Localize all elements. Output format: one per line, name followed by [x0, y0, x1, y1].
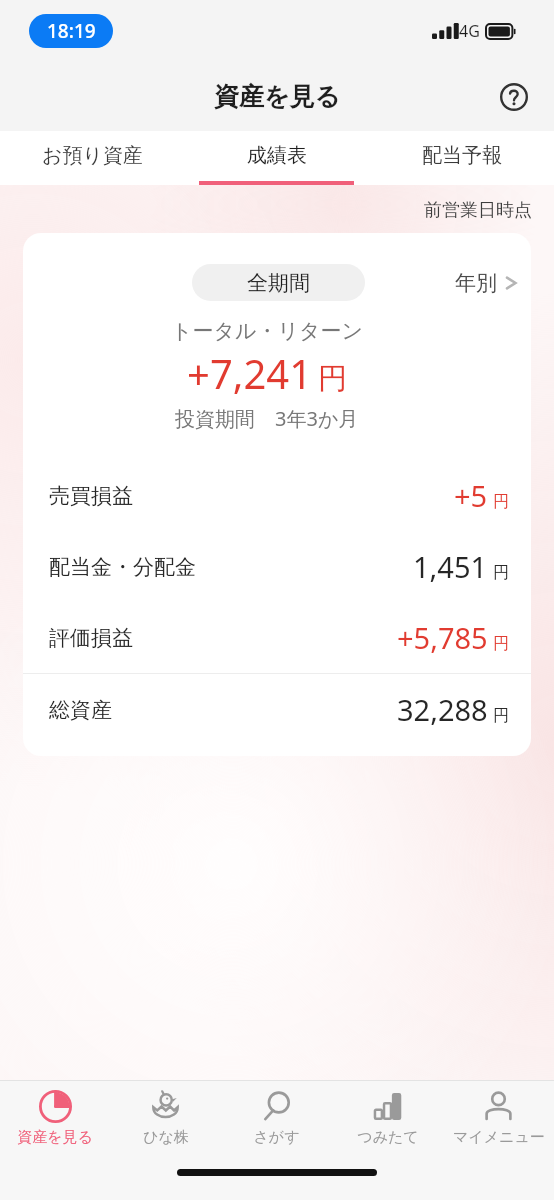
staticText: つみたて: [357, 1128, 419, 1147]
staticText: 4G: [459, 20, 480, 42]
staticText: +7,241: [187, 346, 313, 400]
staticText: 円: [493, 706, 509, 726]
button[interactable]: 配当金・分配金: [23, 531, 531, 602]
staticText: 年別: [455, 270, 497, 296]
button[interactable]: つみたて: [332, 1081, 443, 1163]
staticText: 32,288: [397, 690, 488, 729]
button[interactable]: 評価損益: [23, 602, 531, 673]
staticText: 成績表: [247, 143, 307, 168]
staticText: 円: [493, 563, 509, 583]
staticText: 資産を見る: [17, 1128, 93, 1147]
button[interactable]: ひな株: [110, 1081, 221, 1163]
staticText: ひな株: [143, 1128, 189, 1147]
staticText: 円: [318, 360, 347, 397]
staticText: マイメニュー: [453, 1128, 545, 1147]
staticText: 円: [493, 492, 509, 512]
button[interactable]: 年別: [455, 270, 520, 296]
staticText: 1,451: [413, 547, 488, 586]
staticText: 売買損益: [49, 483, 133, 509]
staticText: 円: [493, 634, 509, 654]
staticText: 配当金・分配金: [49, 554, 196, 580]
staticText: 前営業日時点: [424, 199, 532, 222]
staticText: さがす: [253, 1128, 300, 1147]
button[interactable]: お預り資産: [0, 131, 184, 185]
staticText: 18:19: [47, 18, 96, 44]
staticText: トータル・リターン: [171, 318, 363, 344]
button[interactable]: マイメニュー: [443, 1081, 554, 1163]
button[interactable]: 配当予報: [369, 131, 554, 185]
staticText: 全期間: [247, 270, 310, 296]
staticText: お預り資産: [42, 143, 143, 168]
staticText: 投資期間 3年3か月: [175, 405, 359, 432]
staticText: 総資産: [49, 697, 112, 723]
button[interactable]: 全期間: [192, 264, 365, 301]
staticText: +5,785: [397, 618, 488, 657]
button[interactable]: 売買損益: [23, 460, 531, 531]
staticText: 配当予報: [422, 143, 502, 168]
button[interactable]: さがす: [221, 1081, 332, 1163]
staticText: 資産を見る: [214, 81, 341, 112]
button[interactable]: 資産を見る: [0, 1081, 110, 1163]
button[interactable]: 総資産: [23, 674, 531, 745]
button[interactable]: 成績表: [184, 131, 369, 185]
staticText: +5: [454, 476, 488, 515]
button[interactable]: Help: [492, 75, 536, 119]
staticText: 評価損益: [49, 625, 133, 651]
